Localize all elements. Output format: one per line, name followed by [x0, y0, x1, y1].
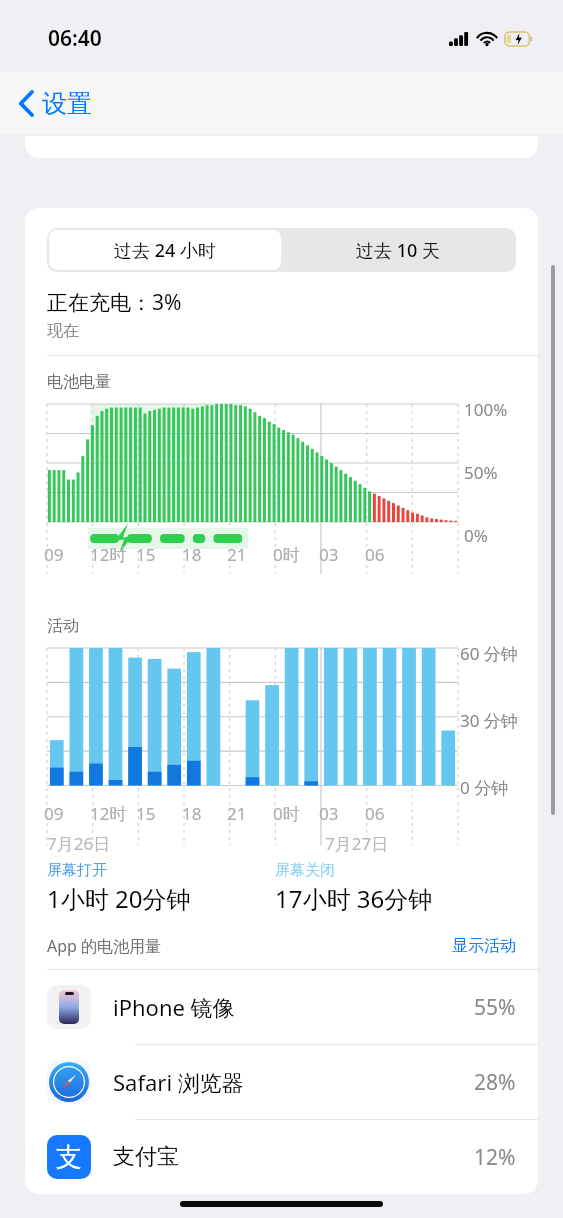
staticText: 21	[227, 802, 247, 825]
staticText: App 的电池用量	[47, 935, 162, 957]
staticText: 55%	[474, 993, 516, 1022]
button[interactable]: 显示活动	[452, 936, 516, 956]
staticText: 15	[136, 543, 156, 566]
staticText: 正在充电：3%	[47, 288, 182, 317]
button[interactable]: 过去 24 小时	[49, 230, 281, 270]
staticText: 现在	[47, 321, 79, 341]
staticText: 0时	[273, 802, 300, 825]
button[interactable]: 过去 10 天	[281, 230, 514, 270]
staticText: 06:40	[48, 24, 102, 53]
button[interactable]: iPhone 镜像	[25, 970, 538, 1044]
staticText: 50%	[464, 461, 498, 484]
staticText: 电池电量	[47, 372, 111, 392]
staticText: 0 分钟	[460, 776, 509, 799]
staticText: 7月27日	[325, 832, 389, 855]
staticText: 03	[319, 543, 339, 566]
staticText: iPhone 镜像	[113, 992, 235, 1022]
staticText: 12时	[90, 543, 127, 566]
staticText: 12时	[90, 802, 127, 825]
staticText: 0%	[464, 524, 488, 547]
staticText: 09	[44, 543, 64, 566]
staticText: 03	[319, 802, 339, 825]
staticText: 06	[365, 802, 385, 825]
staticText: 21	[227, 543, 247, 566]
staticText: 过去 24 小时	[114, 238, 216, 263]
button[interactable]: Safari 浏览器	[25, 1045, 538, 1119]
staticText: 过去 10 天	[356, 238, 440, 263]
staticText: Safari 浏览器	[113, 1067, 244, 1097]
staticText: 1小时 20分钟	[47, 882, 191, 915]
staticText: 屏幕关闭	[275, 861, 335, 880]
staticText: 09	[44, 802, 64, 825]
staticText: 12%	[474, 1143, 516, 1172]
staticText: 屏幕打开	[47, 861, 107, 880]
staticText: 18	[182, 543, 202, 566]
staticText: 28%	[474, 1068, 516, 1097]
staticText: 100%	[464, 398, 508, 421]
staticText: 显示活动	[452, 936, 516, 956]
staticText: 支	[56, 1141, 82, 1174]
button[interactable]: 设置	[12, 82, 100, 125]
staticText: 活动	[47, 616, 79, 636]
staticText: 30 分钟	[460, 709, 518, 732]
staticText: 15	[136, 802, 156, 825]
staticText: 7月26日	[47, 832, 111, 855]
button[interactable]: 支	[25, 1120, 538, 1194]
staticText: 18	[182, 802, 202, 825]
staticText: 06	[365, 543, 385, 566]
staticText: 设置	[42, 88, 92, 119]
staticText: 0时	[273, 543, 300, 566]
staticText: 支付宝	[113, 1143, 179, 1171]
staticText: 60 分钟	[460, 642, 518, 665]
staticText: 17小时 36分钟	[275, 882, 433, 915]
